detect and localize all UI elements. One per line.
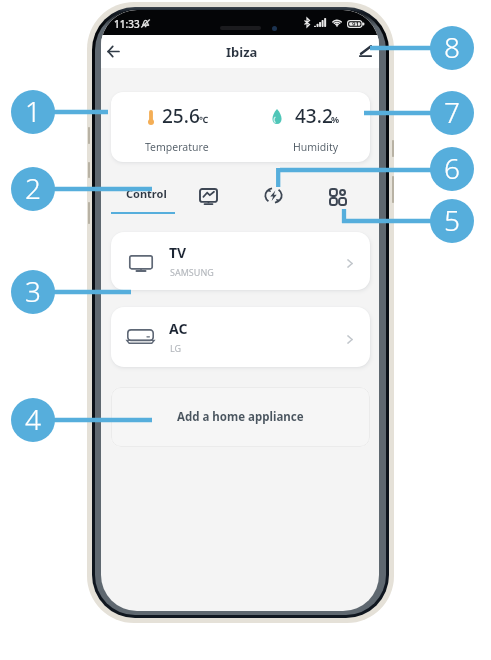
button[interactable]: Back	[102, 40, 126, 64]
staticText: 8	[444, 28, 460, 66]
button[interactable]: Statistics	[194, 183, 223, 210]
button[interactable]: Control	[111, 186, 176, 224]
button[interactable]: Add a home appliance	[111, 387, 370, 447]
button[interactable]: TV	[111, 232, 370, 290]
staticText: 2	[25, 169, 41, 207]
staticText: Ibiza	[226, 43, 258, 61]
staticText: 7	[444, 93, 460, 131]
staticText: TV	[169, 243, 187, 262]
staticText: 6	[444, 149, 460, 187]
staticText: 91	[352, 20, 359, 28]
staticText: AC	[169, 319, 188, 338]
staticText: 4	[25, 400, 41, 438]
staticText: 11:33	[114, 17, 140, 31]
button[interactable]: Apps	[324, 183, 350, 209]
staticText: %	[331, 113, 340, 125]
staticText: 3	[25, 272, 41, 310]
button[interactable]: Edit	[353, 39, 377, 63]
staticText: LG	[170, 342, 182, 354]
button[interactable]: AC	[111, 307, 370, 367]
staticText: Temperature	[145, 140, 209, 154]
button[interactable]: Energy	[259, 182, 288, 209]
staticText: Add a home appliance	[177, 409, 304, 425]
staticText: Control	[126, 186, 167, 201]
staticText: ℃	[199, 113, 209, 125]
staticText: 5	[444, 201, 460, 239]
staticText: 43.2	[295, 103, 333, 129]
staticText: 25.6	[162, 103, 200, 129]
staticText: SAMSUNG	[170, 266, 214, 278]
staticText: 1	[25, 92, 41, 130]
staticText: Humidity	[293, 140, 339, 154]
